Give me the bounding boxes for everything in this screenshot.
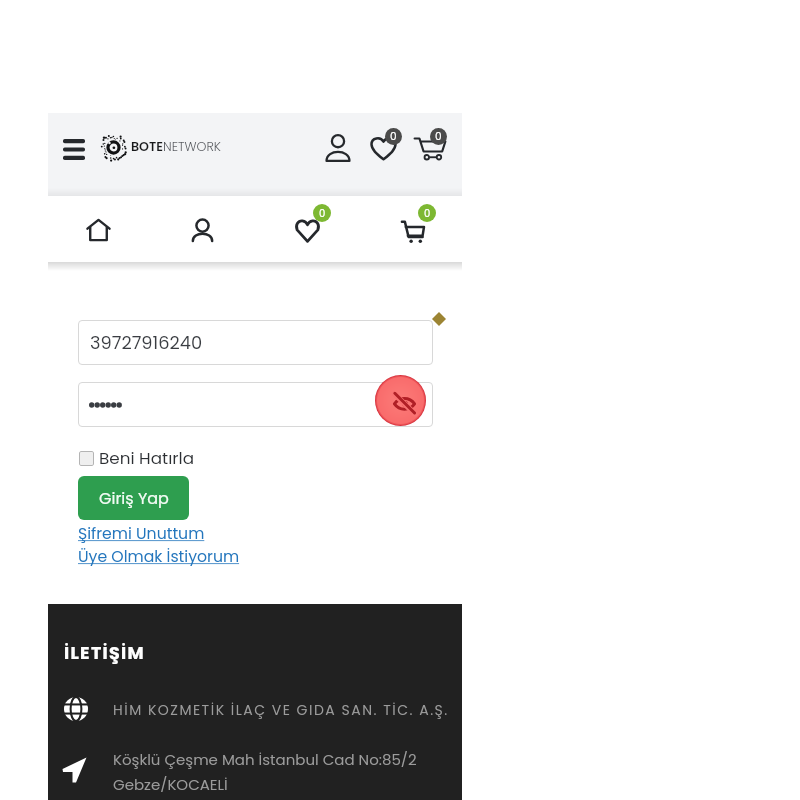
button[interactable]: Beni Hatırla (79, 446, 195, 470)
button[interactable]: Menu (52, 129, 96, 173)
staticText: HİM KOZMETİK İLAÇ VE GIDA SAN. TİC. A.Ş. (113, 700, 449, 720)
button[interactable]: Cart (410, 126, 452, 166)
staticText: 0 (319, 206, 326, 220)
staticText: Beni Hatırla (99, 446, 195, 470)
staticText: NETWORK (163, 138, 222, 156)
button[interactable]: Üye Olmak İstiyorum (78, 546, 240, 568)
button[interactable]: Show password (375, 375, 426, 426)
staticText: İLETİŞİM (64, 641, 145, 666)
button[interactable]: Şifremi Unuttum (78, 523, 205, 545)
staticText: 0 (390, 129, 397, 144)
button[interactable]: Account (176, 204, 228, 256)
button[interactable]: Cart (386, 204, 438, 256)
staticText: BOTE (131, 138, 163, 156)
staticText: 39727916240 (90, 330, 203, 355)
staticText: 0 (435, 129, 442, 144)
button[interactable]: Favourites (281, 204, 333, 256)
staticText: Köşklü Çeşme Mah İstanbul Cad No:85/2 (113, 749, 417, 770)
staticText: Giriş Yap (99, 487, 169, 509)
button[interactable] (78, 382, 433, 427)
button[interactable]: 39727916240 (78, 320, 433, 365)
button[interactable]: Giriş Yap (78, 476, 189, 520)
button[interactable]: Home (72, 204, 124, 256)
staticText: 0 (424, 206, 431, 220)
staticText: Gebze/KOCAELİ (113, 774, 228, 795)
button[interactable]: Favourites (366, 126, 406, 166)
button[interactable]: Account (316, 127, 358, 169)
